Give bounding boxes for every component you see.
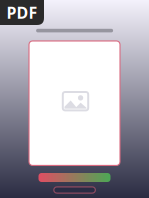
- button[interactable]: PDF: [0, 0, 44, 25]
- staticText: PDF: [6, 2, 37, 23]
- button[interactable]: Progress: [38, 173, 110, 182]
